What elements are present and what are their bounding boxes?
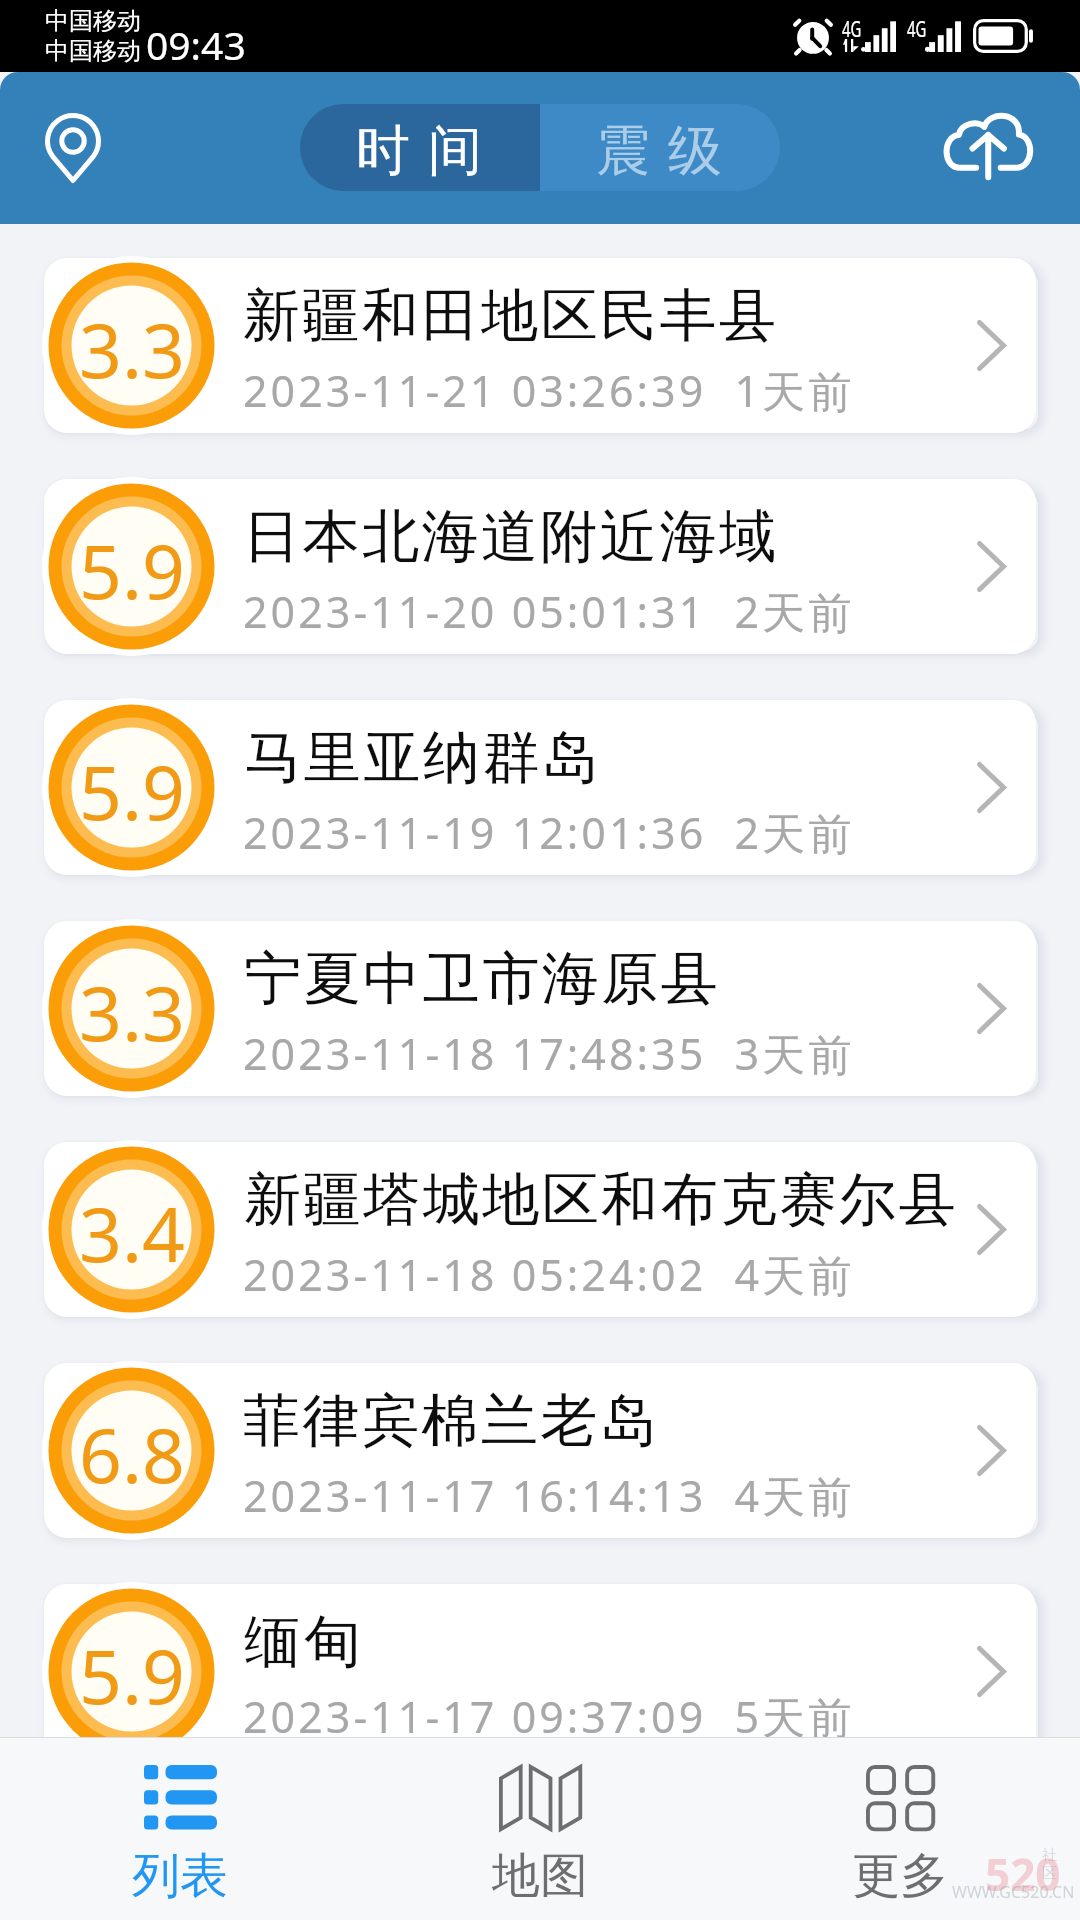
button[interactable]: Location [25,100,121,196]
staticText: 新疆和田地区民丰县 [243,280,779,352]
staticText: 5.9 [79,519,185,621]
button[interactable]: 更多 [720,1738,1080,1920]
staticText: 新疆塔城地区和布克赛尔县 [243,1164,957,1236]
staticText: 5.9 [79,1624,185,1726]
staticText: 时 间 [356,111,485,185]
staticText: 2023-11-17 09:37:09 5天前 [243,1687,855,1746]
button[interactable]: 新疆和田地区民丰县 [42,256,1038,435]
button[interactable]: 缅甸 [42,1582,1038,1761]
staticText: 3.3 [79,961,185,1063]
button[interactable]: Upload to cloud [939,95,1035,191]
staticText: 2023-11-20 05:01:31 2天前 [243,582,855,641]
staticText: 4G [907,13,927,43]
staticText: 09:43 [146,18,246,71]
staticText: 520 [985,1844,1061,1904]
staticText: 马里亚纳群岛 [243,722,600,794]
staticText: 列表 [132,1846,228,1906]
button[interactable]: 日本北海道附近海域 [42,477,1038,656]
button[interactable]: 震 级 [540,104,780,191]
staticText: 缅甸 [243,1606,362,1678]
staticText: 3.4 [79,1182,185,1284]
button[interactable]: 马里亚纳群岛 [42,698,1038,877]
button[interactable]: 时 间 [300,104,540,191]
staticText: 更多 [852,1846,948,1906]
staticText: 菲律宾棉兰老岛 [243,1385,660,1457]
staticText: 2023-11-18 17:48:35 3天前 [243,1024,855,1083]
staticText: 6.8 [79,1403,185,1505]
staticText: WWW.GC520.CN [952,1881,1075,1903]
button[interactable]: 地图 [360,1738,720,1920]
staticText: 3.3 [79,298,185,400]
staticText: 社 区 [1042,1846,1057,1883]
staticText: 地图 [492,1846,588,1906]
staticText: 2023-11-18 05:24:02 4天前 [243,1245,855,1304]
staticText: 宁夏中卫市海原县 [243,943,719,1015]
staticText: 5.9 [79,740,185,842]
staticText: 日本北海道附近海域 [243,501,779,573]
button[interactable]: 新疆塔城地区和布克赛尔县 [42,1140,1038,1319]
staticText: 2023-11-19 12:01:36 2天前 [243,803,855,862]
button[interactable]: 菲律宾棉兰老岛 [42,1361,1038,1540]
staticText: 中国移动 [45,6,141,36]
button[interactable]: 宁夏中卫市海原县 [42,919,1038,1098]
staticText: 4G [842,13,862,43]
button[interactable]: 列表 [0,1738,360,1920]
staticText: 中国移动 [45,36,141,66]
staticText: 2023-11-21 03:26:39 1天前 [243,361,855,420]
staticText: 震 级 [596,111,725,185]
staticText: 2023-11-17 16:14:13 4天前 [243,1466,855,1525]
